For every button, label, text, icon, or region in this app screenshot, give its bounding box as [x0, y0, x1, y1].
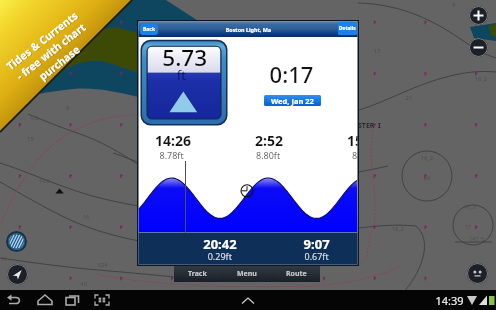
button[interactable]: Details: [338, 22, 357, 35]
button[interactable]: Track: [174, 266, 221, 282]
button[interactable]: Back: [140, 24, 158, 35]
button[interactable]: Home: [35, 292, 55, 308]
button[interactable]: Menu: [221, 266, 273, 282]
staticText: Route: [286, 269, 307, 279]
button[interactable]: Wed, Jan 22: [264, 95, 321, 106]
button[interactable]: Chart layers: [6, 231, 27, 252]
button[interactable]: Zoom out: [469, 38, 488, 57]
button[interactable]: Map settings: [467, 263, 488, 284]
button[interactable]: My location: [7, 264, 28, 285]
staticText: Menu: [237, 269, 257, 279]
button[interactable]: Zoom in: [469, 6, 488, 25]
button[interactable]: Route: [273, 266, 320, 282]
staticText: Track: [188, 269, 207, 279]
button[interactable]: Show navigation: [238, 292, 258, 308]
button[interactable]: Back: [5, 292, 25, 308]
staticText: Back: [143, 26, 156, 33]
staticText: Wed, Jan 22: [271, 96, 314, 106]
button[interactable]: Recent apps: [63, 292, 83, 308]
button[interactable]: Screenshot: [92, 292, 112, 308]
staticText: Details: [339, 25, 356, 32]
